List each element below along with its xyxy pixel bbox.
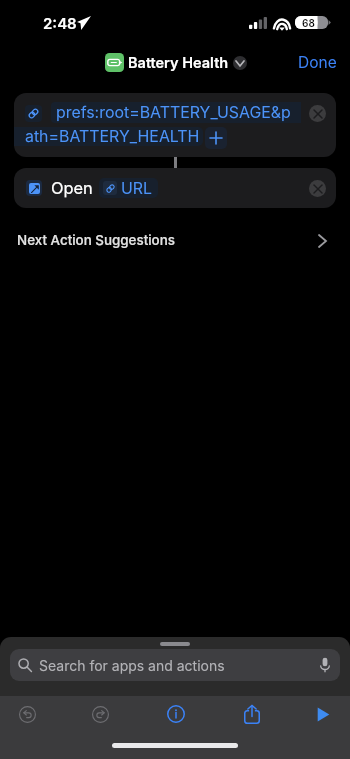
button[interactable]: Shortcut options (233, 56, 247, 70)
staticText: prefs:root=BATTERY_USAGE&p (56, 103, 291, 122)
button[interactable]: Share (230, 694, 274, 734)
staticText: 68 (302, 17, 315, 29)
button[interactable]: Done (282, 47, 350, 78)
button[interactable]: prefs:root=BATTERY_USAGE&p (14, 93, 336, 157)
button[interactable]: Info (154, 694, 198, 734)
button[interactable]: Next Action Suggestions (0, 228, 350, 254)
button[interactable]: Search for apps and actions (10, 649, 340, 681)
staticText: Done (298, 53, 337, 72)
staticText: Search for apps and actions (39, 657, 225, 674)
button[interactable]: Undo (5, 694, 49, 734)
staticText: Open (51, 178, 93, 198)
button[interactable]: Open (14, 168, 336, 208)
button[interactable]: Add variable (205, 127, 227, 149)
staticText: Next Action Suggestions (17, 232, 175, 248)
staticText: URL (121, 179, 153, 198)
button[interactable]: Remove action (309, 180, 326, 197)
staticText: ath=BATTERY_HEALTH (25, 127, 200, 146)
staticText: Battery Health (128, 54, 229, 72)
button[interactable]: Run (301, 694, 345, 734)
button[interactable]: Remove action (309, 105, 326, 122)
button[interactable]: Redo (78, 694, 122, 734)
staticText: 2:48 (43, 14, 77, 32)
